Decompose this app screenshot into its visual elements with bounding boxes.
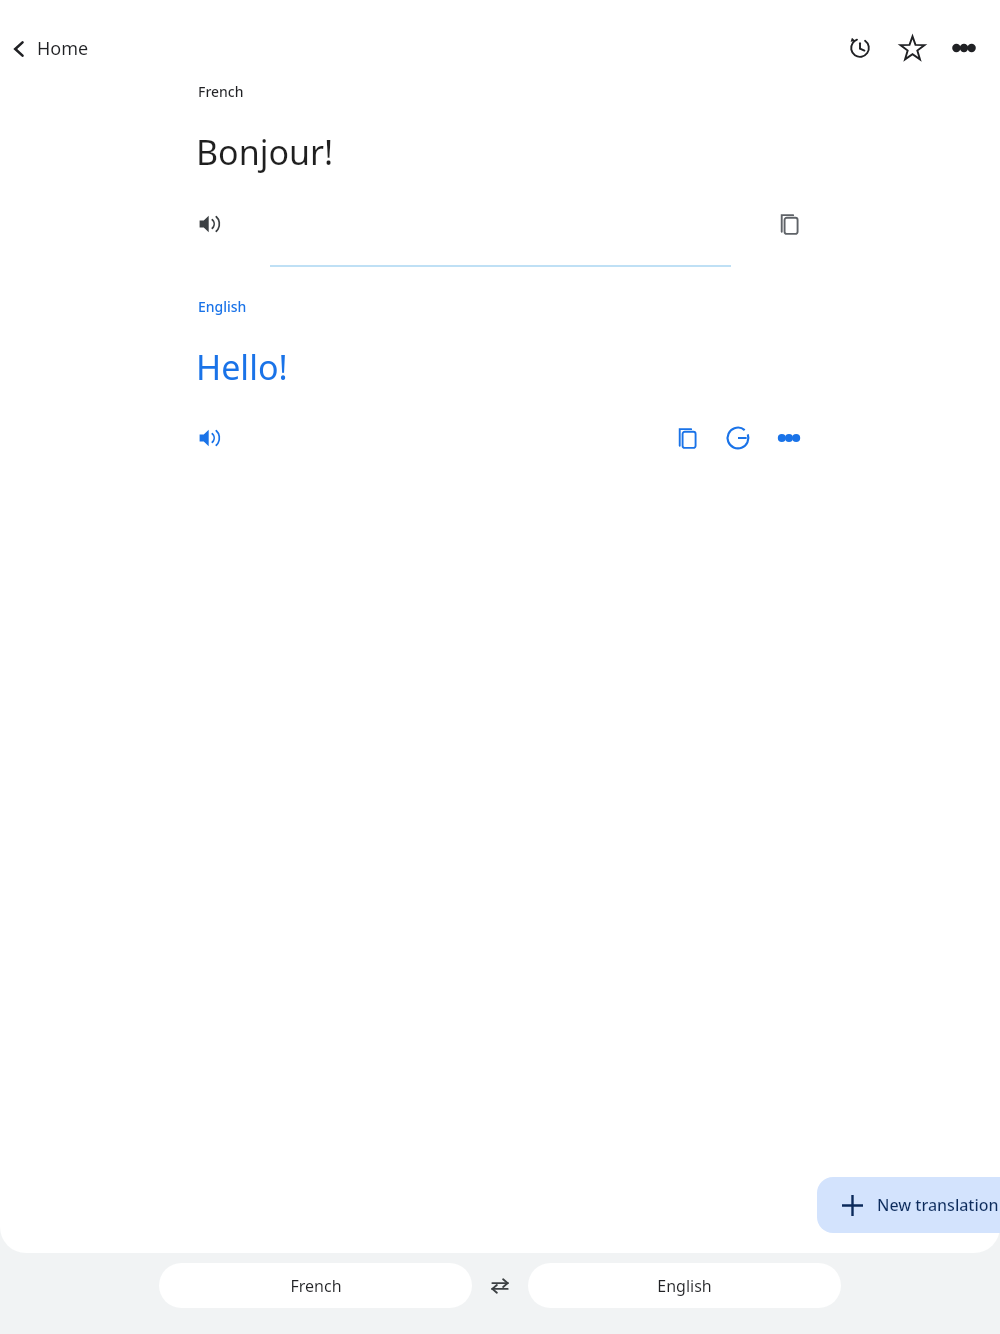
button[interactable]: History: [834, 22, 886, 74]
button[interactable]: Listen to translation: [186, 414, 234, 462]
button[interactable]: More options: [938, 22, 990, 74]
button[interactable]: More translation options: [765, 414, 813, 462]
button[interactable]: Home: [0, 28, 101, 69]
button[interactable]: Search with Google: [714, 414, 762, 462]
button[interactable]: New translation: [817, 1177, 1000, 1233]
staticText: New translation: [877, 1194, 999, 1216]
button[interactable]: Copy source text: [765, 200, 813, 248]
button[interactable]: English: [528, 1263, 841, 1308]
button[interactable]: Listen to source text: [186, 200, 234, 248]
staticText: French: [198, 82, 244, 101]
button[interactable]: French: [159, 1263, 472, 1308]
button[interactable]: Swap languages: [472, 1263, 528, 1308]
staticText: Home: [37, 36, 89, 61]
button[interactable]: Copy translation: [663, 414, 711, 462]
staticText: Hello!: [196, 344, 288, 390]
staticText: French: [290, 1275, 342, 1297]
staticText: English: [198, 297, 247, 316]
staticText: Bonjour!: [196, 129, 334, 175]
staticText: English: [657, 1275, 712, 1297]
button[interactable]: Save to phrasebook: [886, 22, 938, 74]
